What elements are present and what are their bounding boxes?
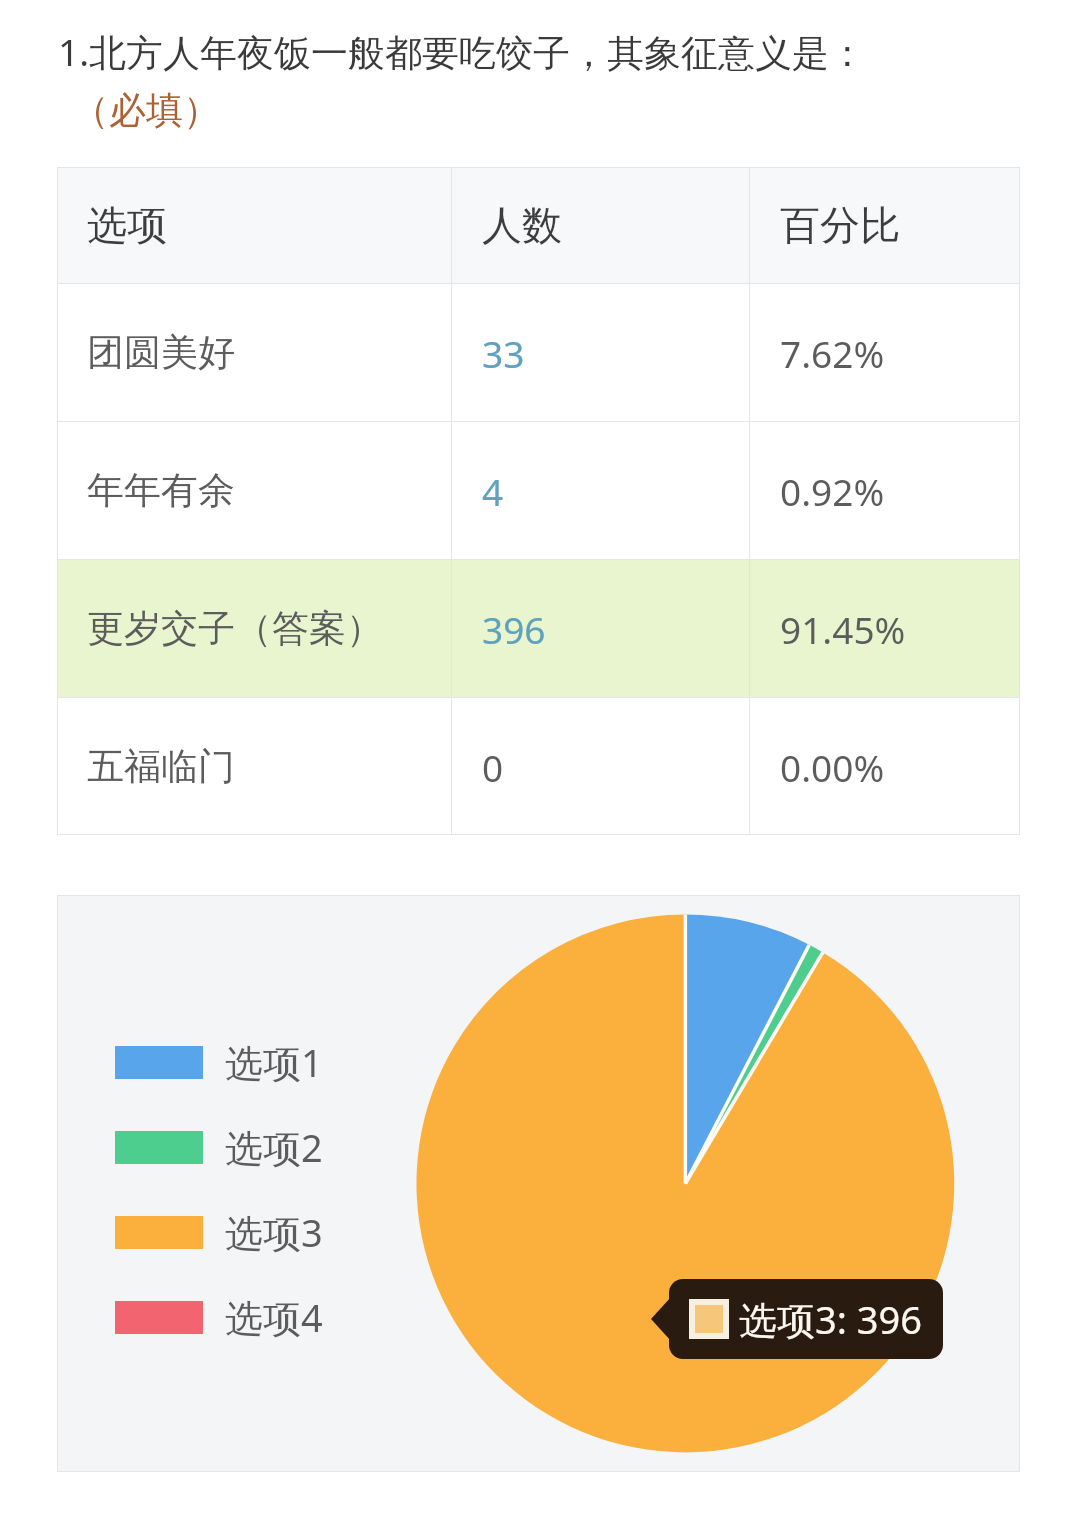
staticText: 0 xyxy=(482,742,504,792)
staticText: 33 xyxy=(482,328,525,378)
button[interactable]: 选项3 xyxy=(115,1206,323,1258)
staticText: 年年有余 xyxy=(87,467,235,514)
button[interactable]: 团圆美好 xyxy=(57,284,1020,421)
staticText: 选项1 xyxy=(225,1036,323,1088)
staticText: 91.45% xyxy=(780,604,906,654)
staticText: 五福临门 xyxy=(87,743,235,790)
staticText: 4 xyxy=(482,466,504,516)
staticText: 选项3: 396 xyxy=(739,1293,923,1345)
staticText: 团圆美好 xyxy=(87,329,235,376)
button[interactable]: 更岁交子（答案） xyxy=(57,560,1020,697)
staticText: 选项4 xyxy=(225,1291,323,1343)
staticText: 百分比 xyxy=(780,200,900,250)
staticText: 7.62% xyxy=(780,328,885,378)
button[interactable]: 选项3: 396 xyxy=(651,1279,945,1359)
staticText: 1.北方人年夜饭一般都要吃饺子，其象征意义是： xyxy=(58,26,867,77)
button[interactable]: 选项4 xyxy=(115,1291,323,1343)
staticText: 人数 xyxy=(482,200,562,250)
staticText: （必填） xyxy=(72,87,220,134)
button[interactable]: 选项2 xyxy=(115,1121,323,1173)
staticText: 选项2 xyxy=(225,1121,323,1173)
button[interactable]: 年年有余 xyxy=(57,422,1020,559)
staticText: 选项3 xyxy=(225,1206,323,1258)
staticText: 396 xyxy=(482,604,546,654)
staticText: 更岁交子（答案） xyxy=(87,605,383,652)
button[interactable]: 选项1 xyxy=(115,1036,323,1088)
staticText: 0.00% xyxy=(780,742,885,792)
staticText: 0.92% xyxy=(780,466,885,516)
staticText: 选项 xyxy=(87,200,167,250)
button[interactable]: 五福临门 xyxy=(57,698,1020,835)
